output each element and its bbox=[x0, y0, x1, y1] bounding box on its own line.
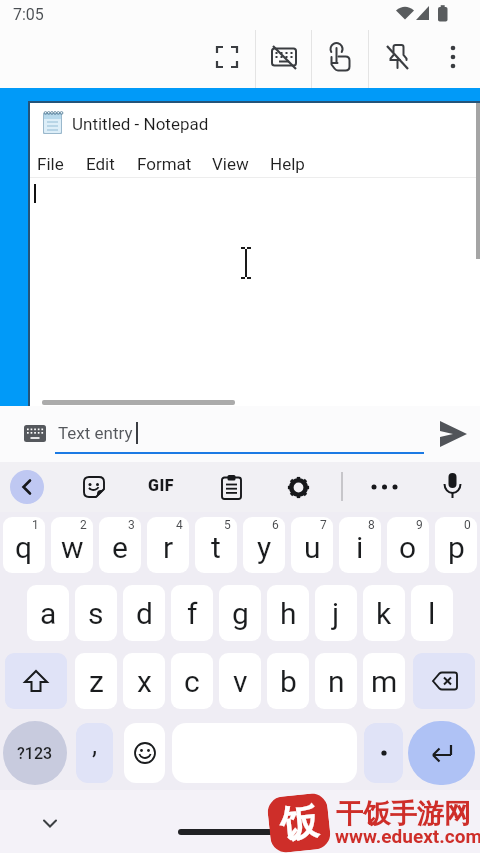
button[interactable]: p bbox=[435, 517, 477, 573]
staticText: File bbox=[37, 154, 64, 174]
button[interactable]: u bbox=[291, 517, 333, 573]
staticText: 7 bbox=[320, 518, 327, 532]
button[interactable] bbox=[325, 42, 355, 74]
button[interactable] bbox=[213, 43, 241, 71]
staticText: r bbox=[163, 530, 174, 565]
button[interactable]: r bbox=[147, 517, 189, 573]
button[interactable]: j bbox=[315, 585, 357, 641]
staticText: e bbox=[112, 530, 128, 565]
staticText: Text entry bbox=[58, 423, 133, 443]
button[interactable]: x bbox=[123, 653, 165, 709]
staticText: a bbox=[40, 596, 57, 631]
button[interactable]: l bbox=[411, 585, 453, 641]
staticText: h bbox=[280, 596, 297, 631]
staticText: 干饭手游网 bbox=[336, 797, 471, 831]
staticText: 6 bbox=[272, 518, 279, 532]
button[interactable]: f bbox=[171, 585, 213, 641]
button[interactable]: t bbox=[195, 517, 237, 573]
button[interactable] bbox=[5, 653, 67, 709]
staticText: s bbox=[88, 596, 104, 631]
button[interactable] bbox=[221, 475, 242, 500]
staticText: i bbox=[356, 530, 364, 565]
staticText: z bbox=[89, 664, 104, 699]
button[interactable]: a bbox=[27, 585, 69, 641]
staticText: o bbox=[399, 530, 417, 565]
button[interactable]: h bbox=[267, 585, 309, 641]
staticText: q bbox=[15, 530, 33, 565]
staticText: 2 bbox=[80, 518, 87, 532]
staticText: w bbox=[61, 530, 84, 565]
button[interactable]: e bbox=[99, 517, 141, 573]
staticText: k bbox=[376, 596, 392, 631]
staticText: m bbox=[371, 664, 398, 699]
button[interactable]: v bbox=[219, 653, 261, 709]
staticText: 4 bbox=[176, 518, 183, 532]
button[interactable] bbox=[10, 470, 44, 504]
button[interactable]: c bbox=[171, 653, 213, 709]
staticText: 1 bbox=[32, 518, 39, 532]
button[interactable]: q bbox=[3, 517, 45, 573]
button[interactable] bbox=[441, 43, 465, 71]
button[interactable] bbox=[383, 42, 411, 72]
staticText: 7:05 bbox=[13, 5, 44, 24]
button[interactable] bbox=[413, 653, 475, 709]
staticText: p bbox=[448, 530, 465, 565]
staticText: 5 bbox=[224, 518, 231, 532]
button[interactable] bbox=[270, 43, 300, 73]
staticText: 8 bbox=[368, 518, 375, 532]
button[interactable]: m bbox=[363, 653, 405, 709]
button[interactable]: n bbox=[315, 653, 357, 709]
button[interactable]: d bbox=[123, 585, 165, 641]
button[interactable]: ?123 bbox=[3, 721, 67, 785]
staticText: 3 bbox=[128, 518, 135, 532]
staticText: 饭 bbox=[278, 797, 320, 849]
button[interactable]: o bbox=[387, 517, 429, 573]
button[interactable] bbox=[83, 476, 106, 499]
button[interactable]: k bbox=[363, 585, 405, 641]
staticText: b bbox=[280, 664, 297, 699]
staticText: GIF bbox=[148, 476, 174, 495]
button[interactable]: y bbox=[243, 517, 285, 573]
button[interactable] bbox=[42, 818, 58, 830]
button[interactable]: , bbox=[76, 723, 113, 783]
staticText: d bbox=[136, 596, 153, 631]
staticText: 0 bbox=[464, 518, 471, 532]
staticText: Edit bbox=[86, 154, 115, 174]
staticText: f bbox=[187, 596, 198, 631]
button[interactable] bbox=[364, 723, 403, 783]
button[interactable] bbox=[443, 473, 462, 501]
button[interactable]: s bbox=[75, 585, 117, 641]
button[interactable]: Text entry bbox=[0, 406, 480, 462]
button[interactable]: g bbox=[219, 585, 261, 641]
button[interactable] bbox=[287, 476, 310, 499]
staticText: t bbox=[211, 530, 221, 565]
staticText: Help bbox=[270, 154, 305, 174]
staticText: l bbox=[428, 596, 436, 631]
staticText: g bbox=[232, 596, 249, 631]
button[interactable]: w bbox=[51, 517, 93, 573]
staticText: ?123 bbox=[17, 744, 53, 763]
button[interactable]: Untitled - Notepad bbox=[0, 88, 480, 406]
staticText: Format bbox=[137, 154, 192, 174]
staticText: 9 bbox=[416, 518, 423, 532]
staticText: v bbox=[233, 664, 248, 699]
staticText: y bbox=[257, 530, 272, 565]
staticText: u bbox=[304, 530, 321, 565]
button[interactable]: i bbox=[339, 517, 381, 573]
staticText: www.eduext.com bbox=[335, 825, 480, 847]
staticText: Untitled - Notepad bbox=[72, 114, 209, 134]
button[interactable] bbox=[408, 721, 475, 785]
staticText: View bbox=[212, 154, 249, 174]
staticText: j bbox=[332, 596, 340, 631]
button[interactable]: z bbox=[75, 653, 117, 709]
staticText: x bbox=[137, 664, 152, 699]
staticText: c bbox=[184, 664, 200, 699]
button[interactable]: b bbox=[267, 653, 309, 709]
button[interactable] bbox=[124, 723, 165, 783]
staticText: , bbox=[92, 730, 98, 760]
staticText: n bbox=[328, 664, 345, 699]
